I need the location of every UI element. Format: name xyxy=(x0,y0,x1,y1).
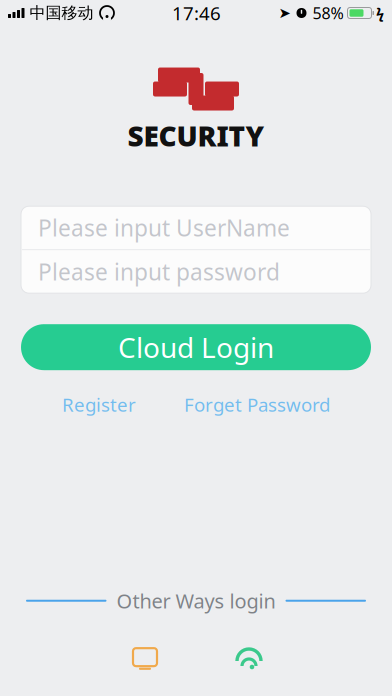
button[interactable]: Cloud Login xyxy=(21,324,371,370)
staticText: 58% xyxy=(312,2,343,24)
button[interactable]: Please input password xyxy=(21,250,371,293)
button[interactable]: Local device login xyxy=(116,638,174,680)
staticText: Forget Password xyxy=(184,392,330,417)
staticText: Other Ways login xyxy=(116,587,275,614)
staticText: ϟ xyxy=(376,3,384,23)
button[interactable]: Please input UserName xyxy=(21,206,371,249)
staticText: 中国移动 xyxy=(29,3,93,23)
staticText: SECURITY xyxy=(127,117,264,154)
staticText: Register xyxy=(62,392,136,417)
staticText: Cloud Login xyxy=(118,329,274,366)
staticText: Please input UserName xyxy=(38,213,290,243)
staticText: Please input password xyxy=(38,257,280,287)
staticText: ➤ xyxy=(278,5,290,21)
button[interactable]: Forget Password xyxy=(180,387,334,422)
button[interactable]: Wi-Fi direct login xyxy=(218,638,276,680)
staticText: 17:46 xyxy=(172,1,221,25)
button[interactable]: Register xyxy=(58,387,140,422)
